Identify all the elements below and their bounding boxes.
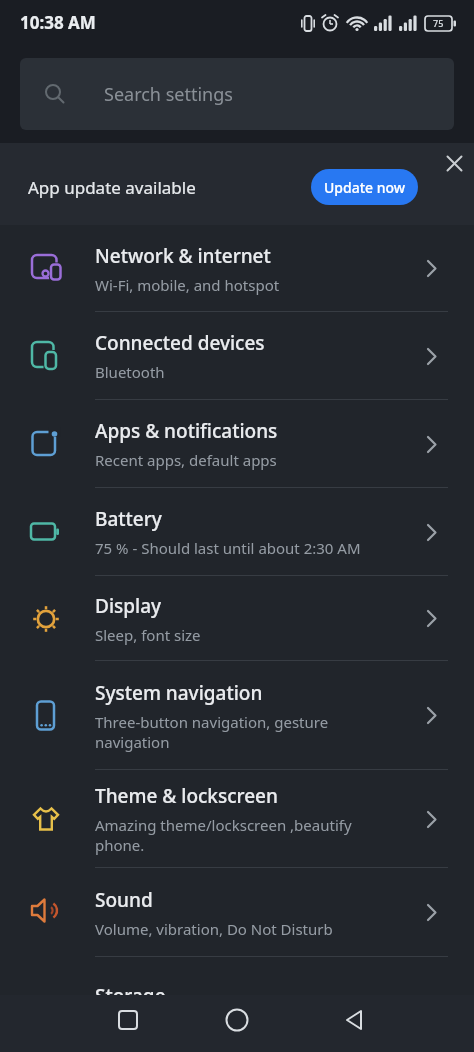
button[interactable]: Display bbox=[0, 576, 474, 661]
staticText: Amazing theme/lockscreen ,beautify bbox=[95, 815, 352, 835]
button[interactable] bbox=[108, 1000, 148, 1040]
staticText: Display bbox=[95, 593, 162, 619]
button[interactable]: Search settings bbox=[20, 58, 454, 130]
staticText: Bluetooth bbox=[95, 362, 165, 382]
staticText: navigation bbox=[95, 732, 170, 752]
button[interactable]: Battery bbox=[0, 488, 474, 576]
button[interactable]: Connected devices bbox=[0, 312, 474, 400]
staticText: Wi-Fi, mobile, and hotspot bbox=[95, 275, 280, 295]
staticText: System navigation bbox=[95, 680, 263, 706]
button[interactable]: Network & internet bbox=[0, 225, 474, 312]
button[interactable]: Sound bbox=[0, 868, 474, 957]
staticText: Sound bbox=[95, 887, 153, 913]
button[interactable]: Update now bbox=[311, 169, 418, 205]
staticText: Connected devices bbox=[95, 330, 265, 356]
button[interactable]: System navigation bbox=[0, 661, 474, 770]
button[interactable] bbox=[217, 1000, 257, 1040]
button[interactable]: Theme & lockscreen bbox=[0, 770, 474, 868]
staticText: phone. bbox=[95, 835, 145, 855]
staticText: Apps & notifications bbox=[95, 418, 278, 444]
staticText: Three-button navigation, gesture bbox=[95, 712, 329, 732]
staticText: Battery bbox=[95, 506, 162, 532]
staticText: Network & internet bbox=[95, 243, 271, 269]
staticText: Sleep, font size bbox=[95, 625, 201, 645]
button[interactable] bbox=[443, 152, 465, 174]
staticText: Storage bbox=[95, 983, 166, 995]
button[interactable] bbox=[335, 1000, 375, 1040]
staticText: 10:38 AM bbox=[20, 11, 96, 34]
staticText: Theme & lockscreen bbox=[95, 783, 278, 809]
staticText: App update available bbox=[28, 176, 196, 199]
button[interactable]: Apps & notifications bbox=[0, 400, 474, 488]
staticText: 75 bbox=[433, 17, 444, 29]
staticText: Volume, vibration, Do Not Disturb bbox=[95, 919, 333, 939]
staticText: Search settings bbox=[104, 82, 233, 107]
staticText: 75 % - Should last until about 2:30 AM bbox=[95, 538, 361, 558]
button[interactable]: Storage bbox=[0, 957, 474, 995]
staticText: Update now bbox=[324, 178, 406, 197]
staticText: Recent apps, default apps bbox=[95, 450, 277, 470]
